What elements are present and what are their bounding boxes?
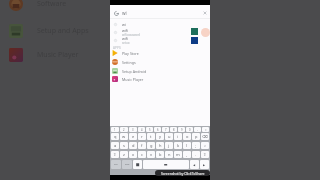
button[interactable]: Setup and Apps (9, 24, 104, 38)
staticText: 6 (157, 128, 159, 132)
button[interactable]: Key c (138, 151, 146, 158)
button[interactable]: Key 8 (170, 127, 177, 132)
button[interactable]: Key d (129, 142, 137, 149)
button[interactable]: Key g (147, 142, 155, 149)
button[interactable]: Key q (111, 133, 119, 140)
button[interactable]: Key a (111, 142, 119, 149)
staticText: a (114, 143, 117, 148)
button[interactable]: Music Player (9, 48, 104, 62)
staticText: t (150, 134, 152, 139)
staticText: ▶ (203, 163, 206, 166)
staticText: y (159, 134, 162, 139)
button[interactable]: Key y (156, 133, 164, 140)
button[interactable]: Key u (165, 133, 173, 140)
staticText: = (205, 128, 207, 132)
button[interactable]: Key ⇧ (111, 151, 119, 158)
staticText: ; (195, 143, 197, 148)
button[interactable]: Key 3 (129, 127, 137, 132)
button[interactable]: Key ◀ (190, 160, 199, 169)
staticText: f (141, 143, 143, 148)
button[interactable]: Key 4 (138, 127, 145, 132)
staticText: r (141, 134, 143, 139)
button[interactable]: Key o (183, 133, 191, 140)
button[interactable]: Key 6 (154, 127, 161, 132)
button[interactable]: Key ⌫ (201, 133, 209, 140)
button[interactable]: Key h (156, 142, 164, 149)
button[interactable]: Key 2 (120, 127, 128, 132)
button[interactable]: Key n (165, 151, 173, 158)
staticText: ⇧ (203, 152, 207, 157)
button[interactable]: Music Player (112, 75, 210, 83)
staticText: Play Store (122, 51, 139, 56)
button[interactable]: Key 0 (186, 127, 193, 132)
button[interactable]: Google (114, 8, 207, 18)
staticText: n (168, 152, 171, 157)
staticText: q (114, 134, 117, 139)
staticText: . (195, 152, 197, 157)
button[interactable]: wi (114, 20, 207, 28)
button[interactable]: wifi (114, 28, 207, 36)
staticText: h (159, 143, 162, 148)
button[interactable]: Key b (156, 151, 164, 158)
button[interactable]: Settings (112, 58, 210, 66)
button[interactable]: Setup Android (112, 67, 210, 75)
button[interactable]: Key ⌕ (201, 142, 209, 149)
button[interactable]: Key p (192, 133, 200, 140)
staticText: o (186, 134, 189, 139)
staticText: j (168, 143, 170, 148)
button[interactable]: wifi (114, 36, 207, 44)
staticText: e (132, 134, 135, 139)
button[interactable]: Key k (174, 142, 182, 149)
staticText: ⌫ (202, 134, 208, 139)
button[interactable]: Key s (120, 142, 128, 149)
staticText: 9 (181, 128, 183, 132)
staticText: ▬ (164, 162, 168, 167)
button[interactable]: Play Store (112, 49, 210, 57)
button[interactable]: Key 5 (146, 127, 153, 132)
button[interactable]: Key e (129, 133, 137, 140)
staticText: Music Player (122, 77, 144, 82)
button[interactable]: Key l (183, 142, 191, 149)
button[interactable]: Key m (174, 151, 182, 158)
button[interactable]: Key v (147, 151, 155, 158)
button[interactable]: Clear query (203, 11, 207, 15)
button[interactable]: Key t (147, 133, 155, 140)
button[interactable]: Key ▶ (200, 160, 209, 169)
button[interactable]: Key i (174, 133, 182, 140)
staticText: p (195, 134, 198, 139)
button[interactable]: Key - (194, 127, 201, 132)
button[interactable]: Key w (120, 133, 128, 140)
staticText: Ctrl (114, 163, 118, 166)
button[interactable]: Key ; (192, 142, 200, 149)
button[interactable]: Key ■ (133, 160, 142, 169)
button[interactable]: Key x (129, 151, 137, 158)
button[interactable]: Key ⇧ (201, 151, 209, 158)
button[interactable]: Key 1 (111, 127, 119, 132)
button[interactable]: Key Sym (122, 160, 132, 169)
staticText: 1 (114, 128, 116, 132)
other: Google (114, 11, 119, 16)
staticText: d (132, 143, 135, 148)
staticText: m (176, 152, 180, 157)
button[interactable]: Key . (192, 151, 200, 158)
staticText: z (123, 152, 125, 157)
button[interactable]: Key 9 (178, 127, 185, 132)
button[interactable]: Software (9, 0, 104, 11)
staticText: 7 (165, 128, 167, 132)
button[interactable]: Key f (138, 142, 146, 149)
button[interactable]: Key r (138, 133, 146, 140)
button[interactable]: Key j (165, 142, 173, 149)
button[interactable]: Key z (120, 151, 128, 158)
button[interactable]: Key Ctrl (111, 160, 121, 169)
staticText: 8 (173, 128, 175, 132)
staticText: k (177, 143, 180, 148)
staticText: 3 (132, 128, 134, 132)
staticText: c (141, 152, 143, 157)
button[interactable]: Key , (183, 151, 191, 158)
button[interactable]: Key 7 (162, 127, 169, 132)
staticText: w (122, 134, 126, 139)
button[interactable]: Key ▬ (143, 160, 189, 169)
button[interactable]: Key = (202, 127, 209, 132)
